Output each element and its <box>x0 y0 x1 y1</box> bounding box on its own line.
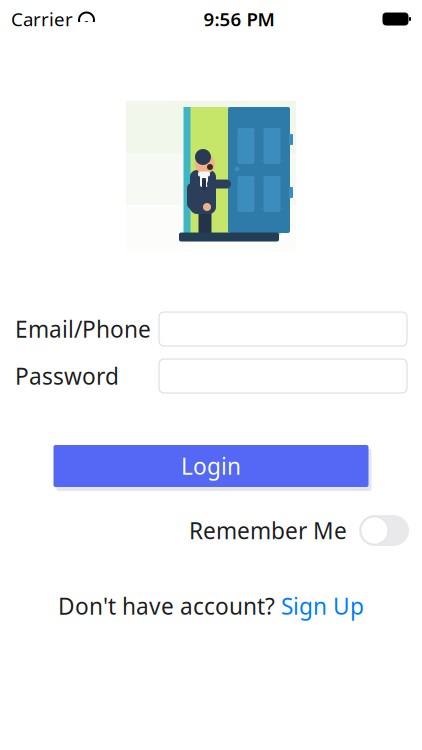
button[interactable]: Remember Me <box>189 515 409 546</box>
button[interactable]: Sign Up <box>281 591 364 621</box>
staticText: Carrier <box>11 7 73 31</box>
staticText: Sign Up <box>281 591 364 621</box>
staticText: Password <box>15 361 119 391</box>
staticText: 9:56 PM <box>203 7 274 31</box>
button[interactable]: Login <box>50 441 372 491</box>
staticText: Email/Phone <box>15 314 151 344</box>
staticText: Remember Me <box>189 515 347 545</box>
staticText: Login <box>181 451 241 481</box>
staticText: Don't have account? <box>58 591 275 621</box>
